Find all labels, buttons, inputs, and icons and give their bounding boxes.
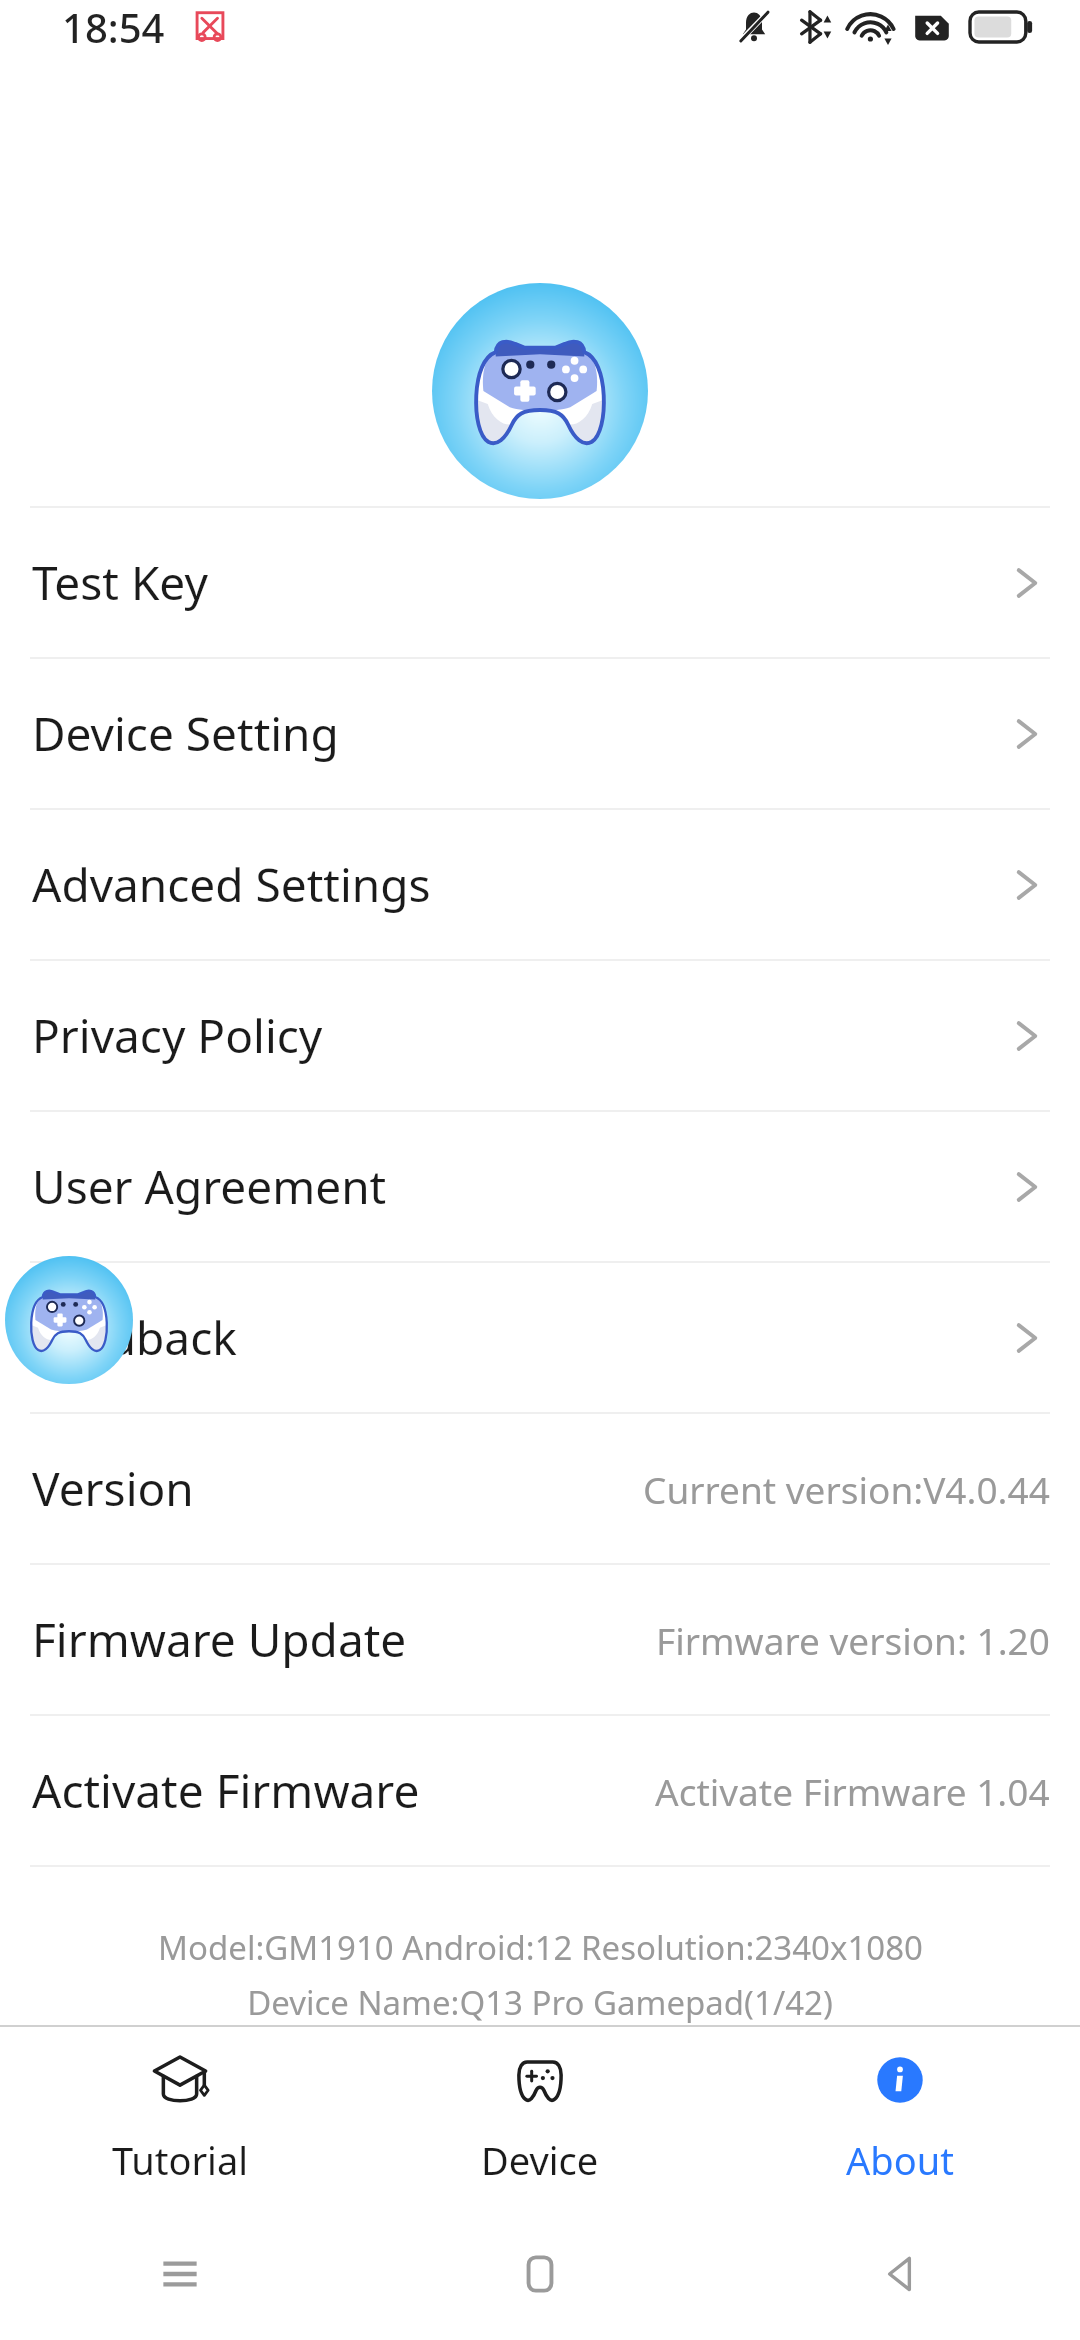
button[interactable]: Back — [720, 2207, 1080, 2340]
button[interactable]: Advanced Settings — [0, 810, 1080, 959]
other: About — [868, 2048, 932, 2112]
staticText: Firmware version: 1.20 — [656, 1615, 1050, 1665]
staticText: Device Setting — [32, 702, 339, 765]
staticText: Tutorial — [112, 2134, 249, 2186]
button[interactable]: Feedback — [0, 1263, 1080, 1412]
staticText: Firmware Update — [32, 1608, 407, 1671]
button[interactable]: Device Setting — [0, 659, 1080, 808]
staticText: User Agreement — [32, 1155, 387, 1218]
button[interactable]: Firmware Update — [0, 1565, 1080, 1714]
other: Tutorial — [148, 2048, 212, 2112]
staticText: Model:GM1910 Android:12 Resolution:2340x… — [158, 1925, 923, 1970]
staticText: 18:54 — [62, 0, 165, 54]
staticText: Version — [32, 1457, 194, 1520]
button[interactable]: About — [720, 2038, 1080, 2196]
button[interactable]: Version — [0, 1414, 1080, 1563]
button[interactable]: Activate Firmware — [0, 1716, 1080, 1865]
button[interactable]: Home — [360, 2207, 720, 2340]
staticText: Feedback — [32, 1306, 237, 1369]
staticText: Device Name:Q13 Pro Gamepad(1/42) — [247, 1980, 833, 2025]
staticText: Current version:V4.0.44 — [643, 1464, 1050, 1514]
staticText: Activate Firmware — [32, 1759, 420, 1822]
button[interactable]: Privacy Policy — [0, 961, 1080, 1110]
other: Device — [508, 2048, 572, 2112]
staticText: About — [846, 2134, 954, 2186]
staticText: Activate Firmware 1.04 — [655, 1766, 1050, 1816]
button[interactable]: Test Key — [0, 508, 1080, 657]
staticText: Privacy Policy — [32, 1004, 323, 1067]
staticText: Device — [481, 2134, 599, 2186]
staticText: Test Key — [32, 551, 208, 614]
button[interactable]: Device — [360, 2038, 720, 2196]
button[interactable]: Recent apps — [0, 2207, 360, 2340]
button[interactable]: User Agreement — [0, 1112, 1080, 1261]
button[interactable]: Tutorial — [0, 2038, 360, 2196]
staticText: Advanced Settings — [32, 853, 431, 916]
